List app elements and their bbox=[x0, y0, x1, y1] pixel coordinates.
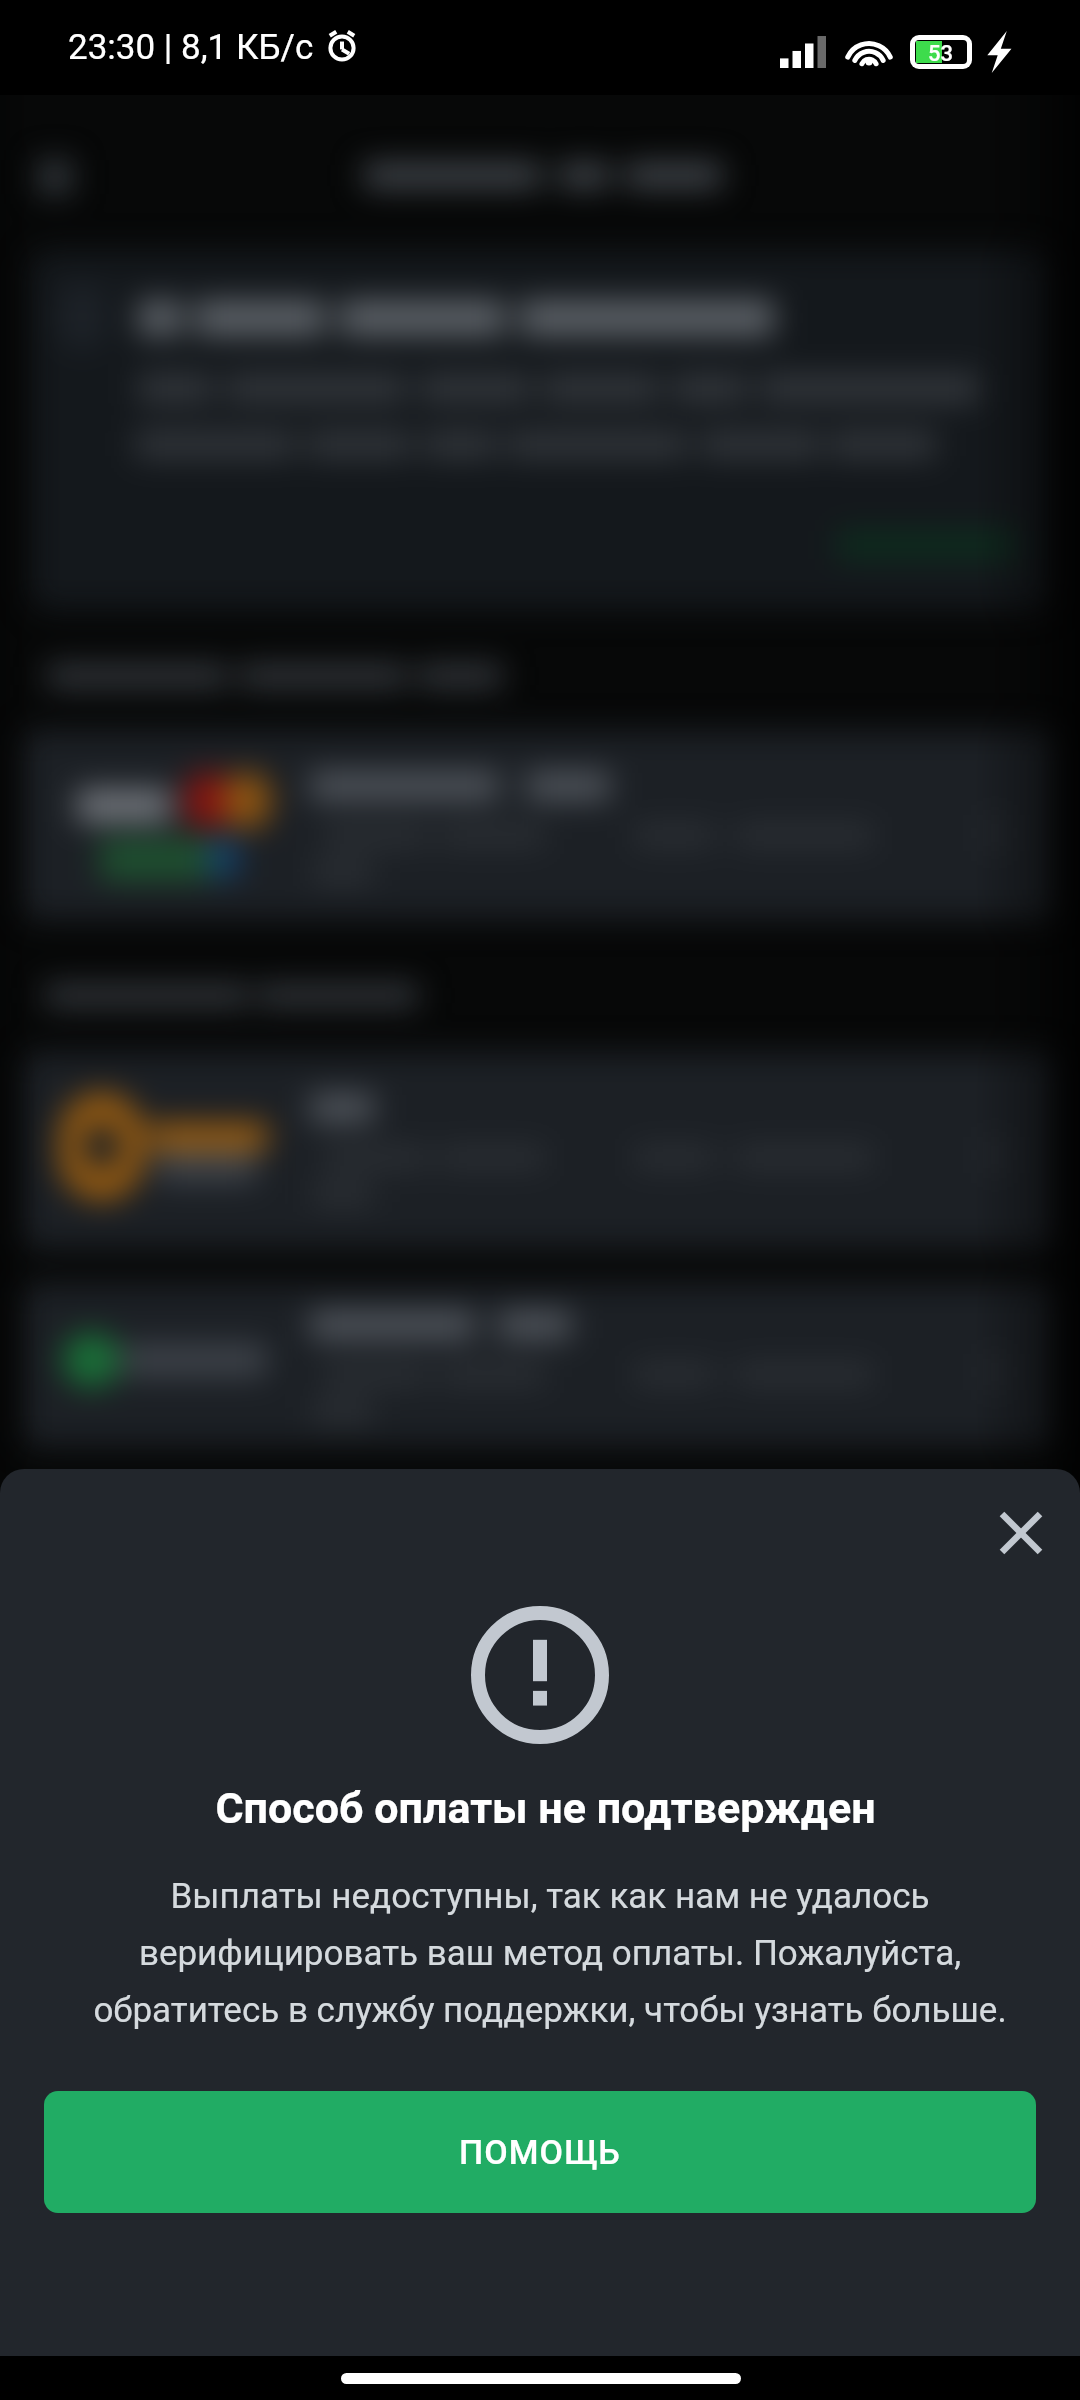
button[interactable]: Закрыть bbox=[975, 1487, 1067, 1579]
staticText: 53 bbox=[928, 41, 954, 63]
button[interactable]: ПОМОЩЬ bbox=[44, 2091, 1036, 2213]
staticText: Выплаты недоступны, так как нам не удало… bbox=[42, 1876, 1058, 2031]
staticText: Способ оплаты не подтвержден bbox=[215, 1783, 876, 1833]
staticText: 23:30 | 8,1 КБ/с bbox=[68, 27, 314, 68]
staticText: ПОМОЩЬ bbox=[459, 2132, 621, 2172]
